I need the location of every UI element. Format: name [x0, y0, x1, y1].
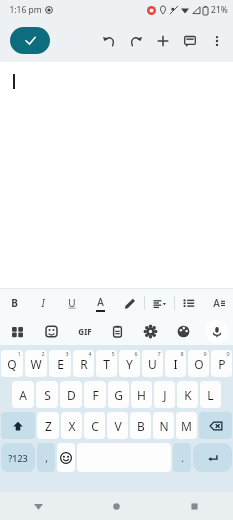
button[interactable]: Home [77, 492, 155, 520]
staticText: V [114, 418, 122, 434]
button[interactable]: Q [1, 350, 23, 377]
staticText: I [41, 296, 45, 310]
staticText: X [68, 418, 76, 434]
staticText: 3 [65, 350, 69, 357]
staticText: U [68, 296, 76, 310]
staticText: C [91, 418, 99, 434]
staticText: Y [126, 356, 133, 372]
button[interactable]: L [200, 381, 221, 408]
staticText: 7 [157, 350, 161, 357]
button[interactable]: Undo [95, 23, 122, 59]
button[interactable]: B [130, 412, 151, 439]
staticText: 6 [134, 350, 138, 357]
button[interactable]: Y [119, 350, 140, 377]
button[interactable]: Highlight [115, 289, 144, 317]
button[interactable]: P [211, 350, 232, 377]
button[interactable]: J [154, 381, 175, 408]
button[interactable]: I [165, 350, 186, 377]
button[interactable]: Recents [155, 492, 233, 520]
button[interactable]: Clipboard [101, 317, 134, 345]
staticText: N [159, 418, 169, 434]
staticText: A [97, 295, 104, 309]
staticText: 9 [203, 350, 207, 357]
staticText: U [148, 356, 157, 372]
button[interactable]: R [73, 350, 94, 377]
button[interactable]: Bold [0, 289, 28, 317]
button[interactable]: X [61, 412, 82, 439]
button[interactable]: Settings [134, 317, 167, 345]
staticText: 4 [88, 350, 92, 357]
button[interactable]: O [188, 350, 209, 377]
staticText: ?123 [8, 452, 28, 464]
staticText: 2 [41, 350, 45, 357]
button[interactable]: Backspace [199, 412, 232, 439]
button[interactable]: Voice input [200, 317, 233, 345]
button[interactable]: K [177, 381, 198, 408]
staticText: G [114, 387, 123, 403]
button[interactable]: Back [0, 492, 77, 520]
button[interactable]: V [107, 412, 128, 439]
staticText: S [44, 387, 51, 403]
button[interactable]: W [25, 350, 47, 377]
button[interactable]: Bulleted list [175, 289, 204, 317]
staticText: 0 [226, 350, 230, 357]
staticText: J [163, 387, 167, 403]
staticText: M [181, 418, 192, 434]
staticText: 5 [111, 350, 115, 357]
button[interactable]: More options [203, 23, 230, 59]
button[interactable]: M [176, 412, 197, 439]
staticText: H [137, 387, 146, 403]
button[interactable]: Comment [176, 23, 203, 59]
button[interactable]: , [37, 443, 55, 472]
button[interactable]: ?123 [1, 443, 35, 472]
button[interactable]: Themes [167, 317, 200, 345]
staticText: R [80, 356, 88, 372]
staticText: I [173, 356, 178, 372]
button[interactable]: G [108, 381, 129, 408]
staticText: K [184, 387, 192, 403]
staticText: 1:16 pm [9, 4, 42, 16]
staticText: , [45, 451, 48, 465]
staticText: 21% [211, 4, 228, 16]
button[interactable]: Redo [122, 23, 149, 59]
button[interactable]: A [12, 381, 34, 408]
staticText: P [218, 356, 226, 372]
staticText: 8 [180, 350, 184, 357]
staticText: O [194, 356, 204, 372]
button[interactable]: Add [149, 23, 176, 59]
button[interactable]: Shift [1, 412, 35, 439]
staticText: T [103, 356, 110, 372]
staticText: D [67, 387, 76, 403]
staticText: Q [7, 356, 17, 372]
button[interactable]: Emoji [57, 443, 75, 472]
staticText: L [207, 387, 214, 403]
staticText: E [57, 356, 64, 372]
button[interactable]: Stickers [34, 317, 68, 345]
button[interactable]: D [60, 381, 82, 408]
button[interactable]: Underline [57, 289, 86, 317]
button[interactable]: Z [37, 412, 59, 439]
button[interactable]: Done [10, 27, 50, 54]
button[interactable]: Alignment [145, 289, 174, 317]
button[interactable]: H [131, 381, 152, 408]
staticText: . [181, 451, 184, 465]
button[interactable]: U [142, 350, 163, 377]
button[interactable]: . [173, 443, 191, 472]
staticText: GIF [78, 326, 92, 337]
button[interactable]: S [36, 381, 58, 408]
button[interactable]: N [153, 412, 174, 439]
button[interactable]: GIF [68, 317, 101, 345]
staticText: Z [45, 418, 52, 434]
button[interactable]: Text style [204, 289, 233, 317]
staticText: F [92, 387, 99, 403]
button[interactable]: T [96, 350, 117, 377]
button[interactable]: Apps [0, 317, 34, 345]
button[interactable]: Italic [28, 289, 57, 317]
button[interactable]: Text color [86, 289, 115, 317]
button[interactable]: F [84, 381, 106, 408]
button[interactable]: Enter [193, 443, 232, 472]
button[interactable]: E [49, 350, 71, 377]
button[interactable]: C [84, 412, 105, 439]
staticText: B [11, 296, 18, 310]
